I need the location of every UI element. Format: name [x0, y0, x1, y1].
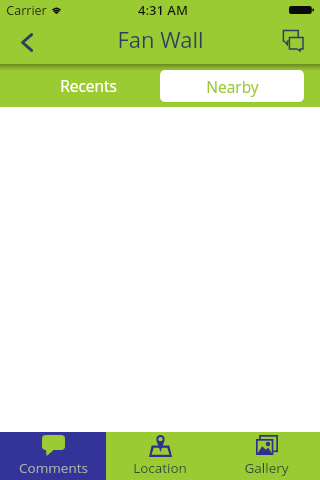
staticText: Carrier: [6, 2, 47, 19]
staticText: Fan Wall: [117, 24, 204, 54]
button[interactable]: Messages: [276, 18, 320, 62]
button[interactable]: Comments: [0, 432, 106, 480]
staticText: Location: [133, 459, 187, 477]
button[interactable]: Gallery: [213, 432, 320, 480]
button[interactable]: Back: [0, 20, 48, 64]
staticText: Gallery: [244, 459, 289, 477]
staticText: Nearby: [206, 76, 259, 97]
staticText: 4:31 AM: [138, 1, 188, 19]
staticText: Recents: [60, 75, 117, 96]
staticText: Comments: [19, 459, 88, 477]
button[interactable]: Location: [106, 432, 213, 480]
button[interactable]: Nearby: [160, 70, 304, 102]
button[interactable]: Recents: [16, 64, 160, 107]
